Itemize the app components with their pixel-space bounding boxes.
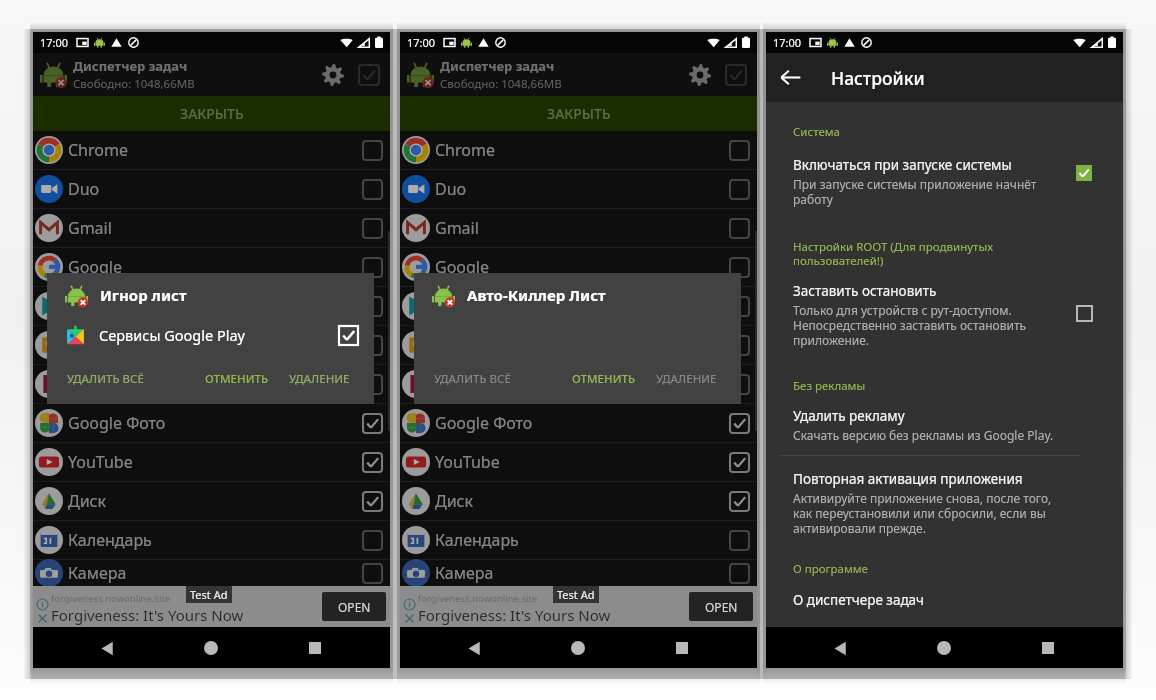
- button[interactable]: Back: [766, 53, 815, 102]
- button[interactable]: Select all: [721, 60, 751, 90]
- button[interactable]: ОТМЕНИТЬ: [568, 368, 640, 390]
- button[interactable]: YouTube: [33, 443, 390, 481]
- staticText: УДАЛЕНИЕ: [289, 371, 350, 387]
- button[interactable]: Заставить остановить: [793, 282, 1092, 348]
- button[interactable]: Диспетчер задач: [73, 55, 195, 94]
- button[interactable]: Gmail: [33, 209, 390, 247]
- button[interactable]: YouTube: [400, 443, 757, 481]
- button[interactable]: УДАЛИТЬ ВСЁ: [63, 368, 148, 390]
- staticText: Диспетчер задач: [73, 57, 188, 75]
- button[interactable]: Gmail: [400, 209, 757, 247]
- button[interactable]: Duo: [400, 170, 757, 208]
- staticText: Duo: [68, 178, 100, 200]
- button[interactable]: Календарь: [33, 521, 390, 559]
- button[interactable]: Календарь: [400, 521, 757, 559]
- button[interactable]: О диспетчере задач: [793, 591, 1092, 609]
- staticText: Test Ad: [557, 587, 595, 602]
- button[interactable]: Chrome: [33, 131, 390, 169]
- staticText: Duo: [435, 178, 467, 200]
- staticText: Удалить рекламу: [793, 407, 905, 425]
- button[interactable]: Recents: [662, 628, 702, 668]
- button[interactable]: Recents: [1028, 628, 1068, 668]
- button[interactable]: Home: [558, 628, 598, 668]
- staticText: OPEN: [338, 599, 371, 615]
- staticText: forgiveness.nowonline.site: [51, 592, 171, 605]
- button[interactable]: ОТМЕНИТЬ: [201, 368, 273, 390]
- button[interactable]: УДАЛИТЬ ВСЁ: [430, 368, 515, 390]
- button[interactable]: Google: [400, 248, 757, 286]
- button[interactable]: ЗАКРЫТЬ: [400, 96, 757, 131]
- button[interactable]: Google Документы: [400, 365, 757, 403]
- staticText: Настройки ROOT (Для продвинутых пользова…: [793, 239, 994, 268]
- button[interactable]: Диск: [400, 482, 757, 520]
- staticText: Свободно: 1048,66MB: [73, 76, 195, 92]
- staticText: Повторная активация приложения: [793, 470, 1023, 488]
- staticText: Камера: [435, 562, 494, 584]
- button[interactable]: Select all: [354, 60, 384, 90]
- staticText: Заставить остановить: [793, 282, 937, 300]
- button[interactable]: Google Play Маркет: [400, 287, 757, 325]
- button[interactable]: Повторная активация приложения: [793, 470, 1092, 536]
- staticText: Только для устройств с рут-доступом. Неп…: [793, 302, 1027, 348]
- button[interactable]: Диспетчер задач: [440, 55, 562, 94]
- staticText: OPEN: [705, 599, 738, 615]
- staticText: ЗАКРЫТЬ: [547, 104, 611, 123]
- button[interactable]: Settings: [315, 57, 351, 93]
- button[interactable]: УДАЛЕНИЕ: [285, 368, 354, 390]
- staticText: 17:00: [407, 35, 436, 50]
- staticText: УДАЛЕНИЕ: [656, 371, 717, 387]
- button[interactable]: Google Play Маркет: [33, 287, 390, 325]
- staticText: Forgiveness: It's Yours Now: [418, 605, 611, 625]
- staticText: forgiveness.nowonline.site: [418, 592, 538, 605]
- button[interactable]: Duo: [33, 170, 390, 208]
- button[interactable]: Settings: [682, 57, 718, 93]
- staticText: Без рекламы: [793, 378, 866, 394]
- button[interactable]: Включаться при запуске системы: [793, 156, 1092, 207]
- button[interactable]: Сервисы Google Play: [65, 317, 358, 353]
- staticText: Календарь: [435, 529, 519, 551]
- button[interactable]: ЗАКРЫТЬ: [33, 96, 390, 131]
- button[interactable]: Google Фото: [400, 404, 757, 442]
- button[interactable]: Google: [33, 248, 390, 286]
- staticText: Google Документы: [435, 373, 582, 395]
- staticText: ОТМЕНИТЬ: [572, 371, 636, 387]
- staticText: Свободно: 1048,66MB: [440, 76, 562, 92]
- button[interactable]: Google Фото: [33, 404, 390, 442]
- staticText: Google Play Маркет: [68, 295, 219, 317]
- staticText: Google: [435, 256, 490, 278]
- staticText: Test Ad: [190, 587, 228, 602]
- button[interactable]: Удалить рекламу: [793, 407, 1092, 443]
- staticText: ОТМЕНИТЬ: [205, 371, 269, 387]
- staticText: Игнор лист: [100, 285, 187, 305]
- button[interactable]: УДАЛЕНИЕ: [652, 368, 721, 390]
- button[interactable]: Google Диск: [33, 326, 390, 364]
- staticText: Диск: [68, 490, 106, 512]
- button[interactable]: Камера: [400, 560, 757, 586]
- staticText: YouTube: [435, 451, 500, 473]
- button[interactable]: Google Документы: [33, 365, 390, 403]
- staticText: Календарь: [68, 529, 152, 551]
- staticText: Диспетчер задач: [440, 57, 555, 75]
- button[interactable]: Home: [924, 628, 964, 668]
- button[interactable]: Back: [454, 628, 494, 668]
- button[interactable]: OPEN: [322, 592, 386, 621]
- button[interactable]: Камера: [33, 560, 390, 586]
- button[interactable]: Back: [87, 628, 127, 668]
- button[interactable]: Recents: [295, 628, 335, 668]
- button[interactable]: Back: [820, 628, 860, 668]
- staticText: О программе: [793, 561, 868, 577]
- staticText: Google Фото: [435, 412, 533, 434]
- button[interactable]: Home: [191, 628, 231, 668]
- button[interactable]: Google Диск: [400, 326, 757, 364]
- staticText: Сервисы Google Play: [99, 325, 245, 345]
- button[interactable]: Chrome: [400, 131, 757, 169]
- staticText: О диспетчере задач: [793, 591, 925, 609]
- button[interactable]: Диск: [33, 482, 390, 520]
- staticText: Google: [68, 256, 123, 278]
- staticText: УДАЛИТЬ ВСЁ: [67, 371, 144, 387]
- staticText: Система: [793, 124, 840, 140]
- staticText: При запуске системы приложение начнёт ра…: [793, 176, 1037, 207]
- button[interactable]: OPEN: [689, 592, 753, 621]
- staticText: YouTube: [68, 451, 133, 473]
